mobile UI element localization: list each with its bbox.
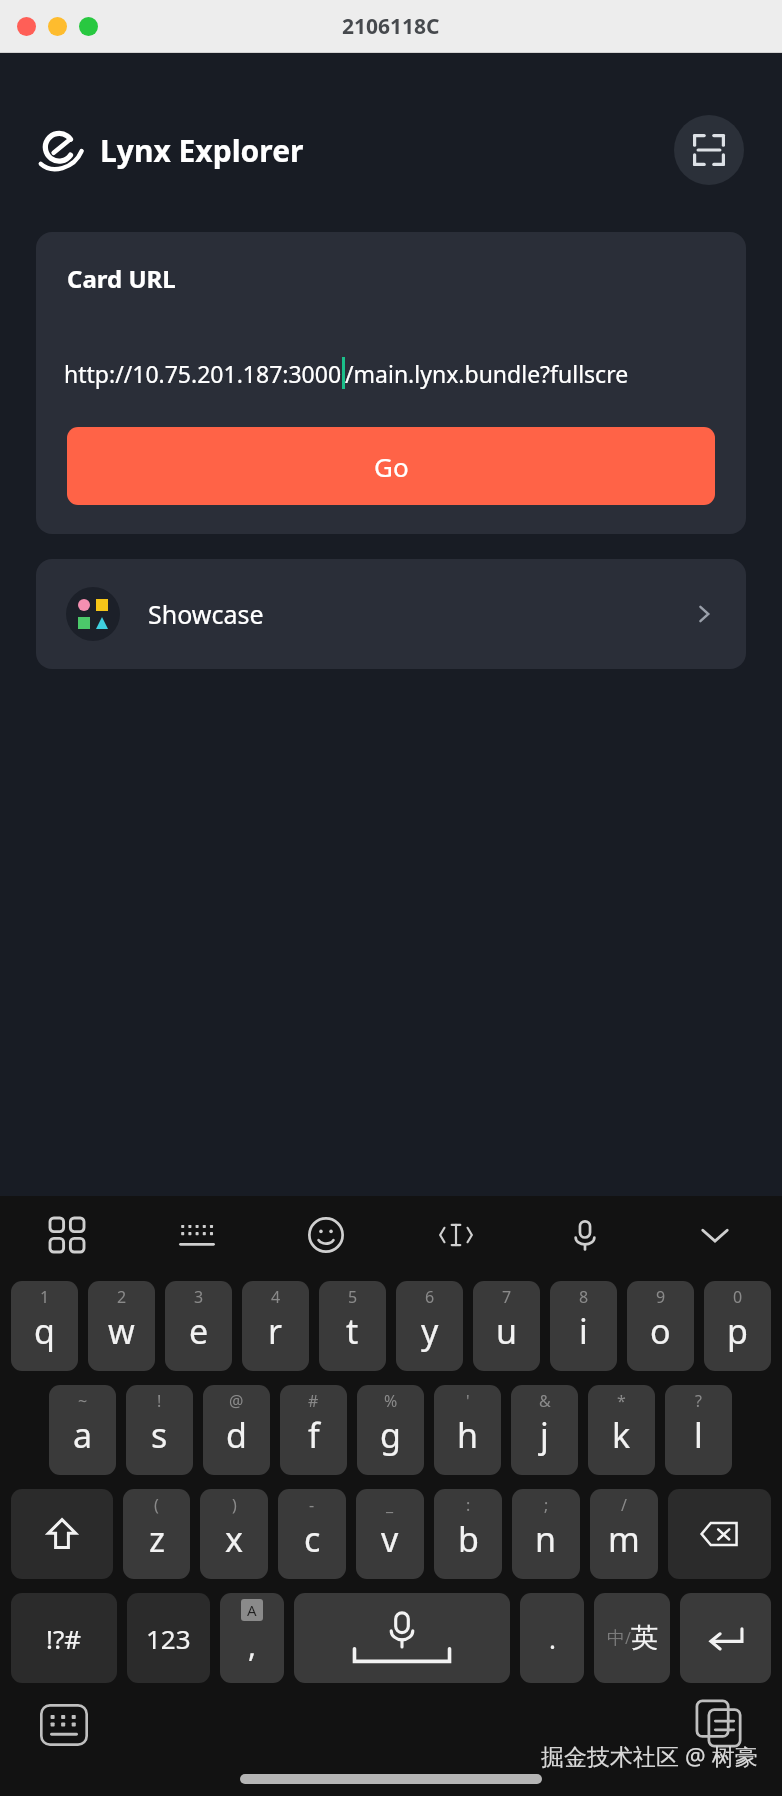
button[interactable]: /: [590, 1489, 658, 1579]
button[interactable]: Scan QR code: [674, 115, 744, 185]
button[interactable]: _: [356, 1489, 424, 1579]
staticText: ;: [544, 1494, 549, 1516]
button[interactable]: Switch language: [594, 1593, 670, 1683]
staticText: 2106118C: [342, 12, 440, 41]
button[interactable]: Go: [67, 427, 715, 505]
button[interactable]: 123: [127, 1593, 210, 1683]
button[interactable]: Space: [294, 1593, 510, 1683]
button[interactable]: ;: [512, 1489, 580, 1579]
button[interactable]: #: [280, 1385, 347, 1475]
button[interactable]: ): [200, 1489, 268, 1579]
staticText: i: [579, 1308, 588, 1354]
staticText: c: [304, 1516, 321, 1562]
staticText: 英: [631, 1621, 658, 1655]
staticText: Go: [374, 449, 409, 484]
button[interactable]: Apps: [30, 1198, 104, 1272]
staticText: l: [694, 1412, 703, 1458]
staticText: @: [229, 1390, 244, 1412]
staticText: *: [617, 1390, 626, 1412]
staticText: 2: [117, 1286, 127, 1308]
button[interactable]: &: [511, 1385, 578, 1475]
staticText: /main.lynx.bundle?fullscre: [345, 358, 629, 389]
staticText: #: [308, 1390, 319, 1412]
staticText: e: [189, 1308, 209, 1354]
staticText: m: [608, 1516, 640, 1562]
staticText: ,: [248, 1625, 257, 1666]
staticText: s: [151, 1412, 168, 1458]
button[interactable]: *: [588, 1385, 655, 1475]
staticText: !: [157, 1390, 162, 1412]
staticText: -: [309, 1494, 315, 1516]
staticText: A: [247, 1600, 257, 1620]
button[interactable]: ': [434, 1385, 501, 1475]
button[interactable]: -: [278, 1489, 346, 1579]
staticText: ~: [78, 1390, 88, 1412]
button[interactable]: !?#: [11, 1593, 117, 1683]
staticText: p: [727, 1308, 748, 1354]
button[interactable]: Voice input: [548, 1198, 622, 1272]
button[interactable]: 6: [396, 1281, 463, 1371]
staticText: 4: [271, 1286, 281, 1308]
button[interactable]: Showcase: [36, 559, 746, 669]
staticText: _: [386, 1494, 394, 1516]
staticText: 6: [425, 1286, 435, 1308]
button[interactable]: Emoji: [289, 1198, 363, 1272]
staticText: 7: [502, 1286, 512, 1308]
button[interactable]: 1: [11, 1281, 78, 1371]
staticText: y: [421, 1308, 439, 1354]
button[interactable]: Shift: [11, 1489, 113, 1579]
button[interactable]: A: [220, 1593, 284, 1683]
button[interactable]: Clipboard: [696, 1700, 742, 1748]
staticText: 5: [348, 1286, 358, 1308]
button[interactable]: %: [357, 1385, 424, 1475]
staticText: Showcase: [148, 597, 264, 631]
staticText: h: [457, 1412, 479, 1458]
button[interactable]: !: [126, 1385, 193, 1475]
staticText: ): [232, 1494, 237, 1516]
staticText: (: [154, 1494, 159, 1516]
button[interactable]: 2: [88, 1281, 155, 1371]
button[interactable]: .: [520, 1593, 584, 1683]
staticText: x: [225, 1516, 243, 1562]
staticText: 8: [579, 1286, 589, 1308]
staticText: .: [549, 1621, 556, 1656]
staticText: w: [108, 1308, 135, 1354]
staticText: n: [535, 1516, 557, 1562]
button[interactable]: 9: [627, 1281, 694, 1371]
button[interactable]: :: [434, 1489, 502, 1579]
button[interactable]: Text cursor: [419, 1198, 493, 1272]
staticText: j: [540, 1412, 549, 1458]
button[interactable]: @: [203, 1385, 270, 1475]
staticText: g: [380, 1412, 401, 1458]
button[interactable]: Switch keyboard: [40, 1704, 88, 1746]
staticText: Card URL: [67, 262, 176, 295]
staticText: v: [381, 1516, 399, 1562]
button[interactable]: Enter: [680, 1593, 771, 1683]
staticText: /: [621, 1494, 627, 1516]
button[interactable]: Keyboard layout: [160, 1198, 234, 1272]
button[interactable]: 0: [704, 1281, 771, 1371]
button[interactable]: 4: [242, 1281, 309, 1371]
staticText: k: [612, 1412, 631, 1458]
staticText: Lynx Explorer: [100, 130, 304, 171]
button[interactable]: 3: [165, 1281, 232, 1371]
staticText: f: [308, 1412, 320, 1458]
staticText: !?#: [46, 1621, 82, 1656]
button[interactable]: ?: [665, 1385, 732, 1475]
staticText: 掘金技术社区 @ 树豪: [541, 1740, 758, 1771]
button[interactable]: 7: [473, 1281, 540, 1371]
button[interactable]: Hide keyboard: [678, 1198, 752, 1272]
staticText: q: [34, 1308, 55, 1354]
staticText: 123: [146, 1621, 191, 1656]
button[interactable]: ~: [49, 1385, 116, 1475]
button[interactable]: (: [123, 1489, 190, 1579]
button[interactable]: 8: [550, 1281, 617, 1371]
staticText: /: [625, 1627, 631, 1649]
staticText: r: [268, 1308, 283, 1354]
staticText: u: [496, 1308, 518, 1354]
button[interactable]: Backspace: [668, 1489, 771, 1579]
button[interactable]: 5: [319, 1281, 386, 1371]
staticText: 9: [656, 1286, 666, 1308]
staticText: 1: [40, 1286, 50, 1308]
staticText: &: [539, 1390, 551, 1412]
